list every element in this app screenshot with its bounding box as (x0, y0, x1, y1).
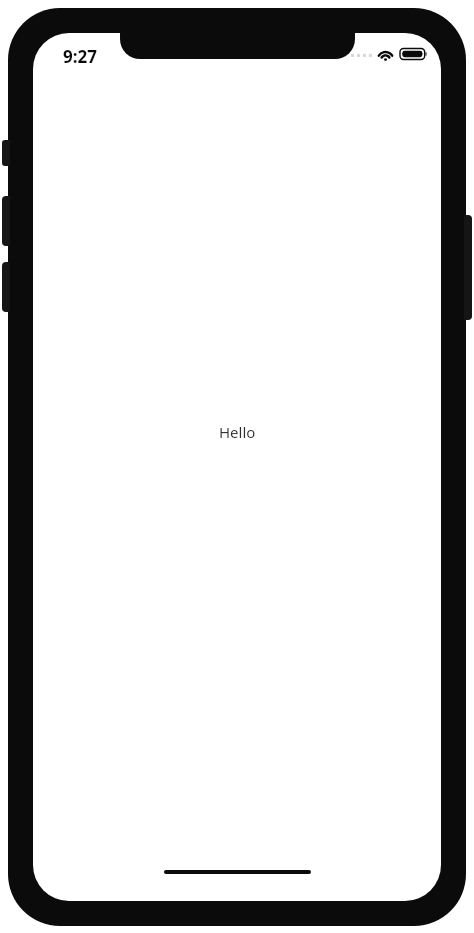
staticText: Hello (219, 422, 256, 442)
button[interactable]: Volume down (2, 262, 10, 312)
button[interactable]: Mute switch (2, 140, 10, 166)
staticText: 9:27 (63, 45, 97, 68)
button[interactable]: Power (464, 215, 472, 320)
button[interactable]: Volume up (2, 196, 10, 246)
